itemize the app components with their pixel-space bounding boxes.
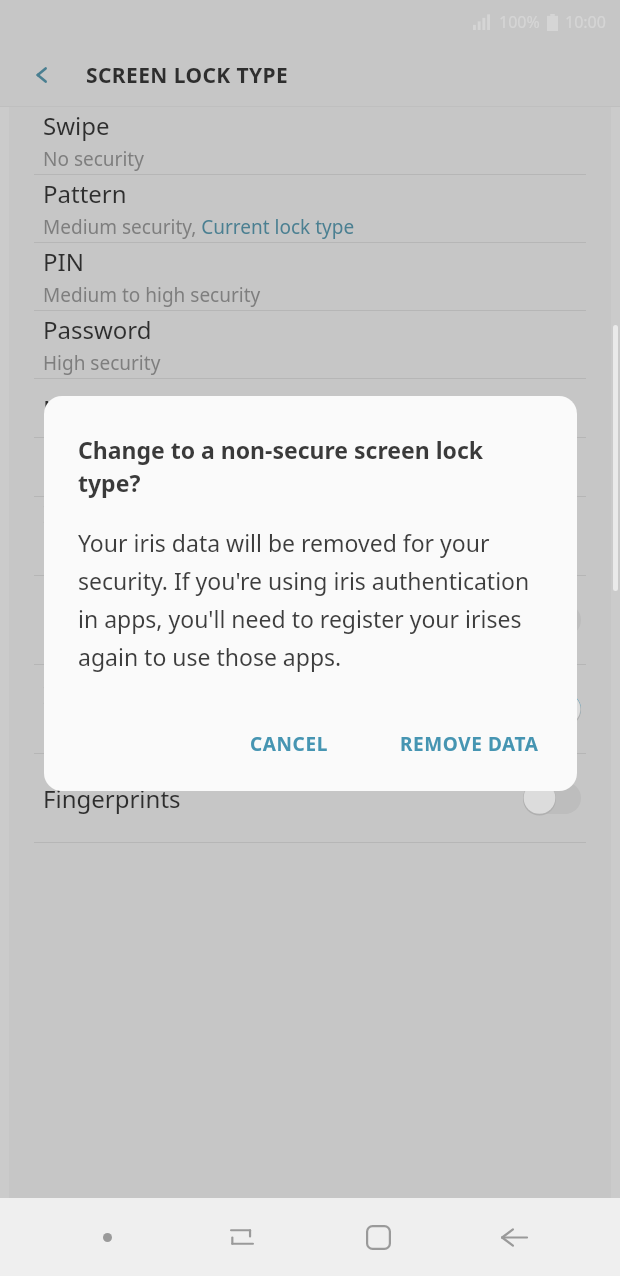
staticText: REMOVE DATA [400, 731, 539, 757]
staticText: Medium to high security [43, 282, 261, 308]
button[interactable]: Recent apps [214, 1209, 270, 1265]
staticText: Iris [43, 678, 79, 711]
button[interactable]: Face [9, 576, 611, 664]
button[interactable]: Pattern [9, 175, 611, 242]
staticText: Registered [43, 715, 139, 741]
button[interactable]: PIN [9, 243, 611, 310]
staticText: Face [43, 604, 94, 637]
staticText: Intelligent Scan [43, 497, 218, 530]
button[interactable]: Biometrics [9, 438, 611, 496]
button[interactable]: Navigate up [20, 52, 66, 98]
staticText: SCREEN LOCK TYPE [86, 61, 289, 90]
staticText: Fingerprints [43, 782, 181, 815]
staticText: Biometrics [43, 451, 164, 484]
button[interactable]: Intelligent Scan [9, 497, 611, 575]
staticText: Medium security, Current lock type [43, 214, 355, 240]
staticText: CANCEL [250, 731, 328, 757]
staticText: 10:00 [565, 11, 606, 33]
button[interactable]: Hide navigation bar [79, 1209, 135, 1265]
staticText: Pattern [43, 177, 127, 210]
button[interactable]: Password [9, 311, 611, 378]
button[interactable]: Swipe [9, 107, 611, 174]
button[interactable]: Home [350, 1209, 406, 1265]
staticText: PIN [43, 245, 84, 278]
staticText: 100% [499, 11, 540, 33]
button[interactable]: None [9, 379, 611, 437]
staticText: Change to a non-secure screen lock type? [78, 434, 547, 499]
staticText: Use your face and irises together to unl… [43, 534, 362, 575]
staticText: Swipe [43, 109, 110, 142]
button[interactable]: Back [485, 1209, 541, 1265]
staticText: High security [43, 350, 161, 376]
staticText: Password [43, 313, 152, 346]
staticText: Your iris data will be removed for your … [78, 527, 547, 673]
staticText: No security [43, 146, 144, 172]
button[interactable]: Fingerprints [9, 754, 611, 842]
button[interactable]: Iris [9, 665, 611, 753]
staticText: None [43, 392, 105, 425]
button[interactable]: CANCEL [232, 719, 346, 769]
button[interactable]: REMOVE DATA [382, 719, 557, 769]
